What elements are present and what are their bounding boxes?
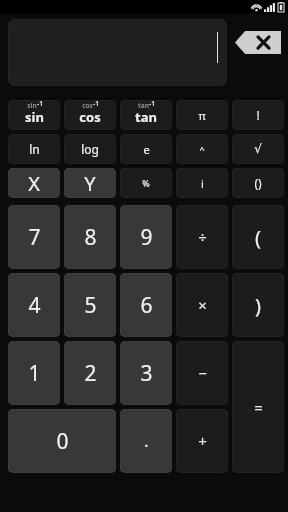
staticText: 7 xyxy=(28,223,41,252)
button[interactable]: . xyxy=(120,409,172,473)
staticText: ) xyxy=(255,292,261,319)
staticText: π xyxy=(198,108,206,123)
staticText: i xyxy=(201,176,204,191)
staticText: 4 xyxy=(28,291,41,320)
staticText: -1 xyxy=(93,100,99,108)
staticText: ÷ xyxy=(198,227,207,247)
staticText: 6 xyxy=(140,291,153,320)
button[interactable]: 4 xyxy=(8,273,60,337)
button[interactable]: X xyxy=(8,168,60,198)
staticText: cos xyxy=(79,108,101,126)
button[interactable]: Delete xyxy=(235,31,281,54)
staticText: + xyxy=(198,431,207,451)
button[interactable]: ) xyxy=(232,273,284,337)
button[interactable]: ! xyxy=(232,100,284,130)
button[interactable]: + xyxy=(176,409,228,473)
staticText: ( xyxy=(255,224,261,251)
staticText: log xyxy=(81,141,99,157)
button[interactable]: ^ xyxy=(176,134,228,164)
button[interactable] xyxy=(8,19,227,86)
button[interactable]: ÷ xyxy=(176,205,228,269)
staticText: cos xyxy=(82,101,93,110)
staticText: % xyxy=(142,177,150,189)
staticText: () xyxy=(254,175,262,191)
button[interactable]: ln xyxy=(8,134,60,164)
staticText: √ xyxy=(254,142,262,156)
staticText: 5 xyxy=(84,291,97,320)
button[interactable]: tan xyxy=(120,100,172,130)
button[interactable]: 7 xyxy=(8,205,60,269)
staticText: = xyxy=(254,397,263,417)
staticText: 3 xyxy=(140,359,153,388)
staticText: -1 xyxy=(149,100,155,108)
button[interactable]: 5 xyxy=(64,273,116,337)
staticText: 2 xyxy=(84,359,97,388)
button[interactable]: 6 xyxy=(120,273,172,337)
button[interactable]: 8 xyxy=(64,205,116,269)
button[interactable]: 0 xyxy=(8,409,116,473)
button[interactable]: π xyxy=(176,100,228,130)
staticText: sin xyxy=(25,108,44,126)
button[interactable]: Equals xyxy=(232,341,284,473)
button[interactable]: e xyxy=(120,134,172,164)
button[interactable]: () xyxy=(232,168,284,198)
staticText: . xyxy=(144,430,149,452)
staticText: Y xyxy=(84,170,96,197)
staticText: 0 xyxy=(56,427,69,456)
button[interactable]: − xyxy=(176,341,228,405)
button[interactable]: % xyxy=(120,168,172,198)
button[interactable]: 1 xyxy=(8,341,60,405)
button[interactable]: 3 xyxy=(120,341,172,405)
button[interactable]: cos xyxy=(64,100,116,130)
button[interactable]: i xyxy=(176,168,228,198)
staticText: 9 xyxy=(140,223,153,252)
staticText: ln xyxy=(29,141,40,157)
staticText: tan xyxy=(138,101,149,110)
staticText: ! xyxy=(256,107,260,123)
staticText: tan xyxy=(135,108,157,126)
button[interactable]: × xyxy=(176,273,228,337)
button[interactable]: ( xyxy=(232,205,284,269)
staticText: sin xyxy=(27,101,37,110)
button[interactable]: Y xyxy=(64,168,116,198)
staticText: e xyxy=(143,142,150,157)
button[interactable]: 2 xyxy=(64,341,116,405)
button[interactable]: log xyxy=(64,134,116,164)
staticText: -1 xyxy=(37,100,43,108)
button[interactable]: sin xyxy=(8,100,60,130)
staticText: − xyxy=(198,363,207,383)
staticText: X xyxy=(28,170,40,197)
button[interactable]: √ xyxy=(232,134,284,164)
staticText: 1 xyxy=(28,359,41,388)
staticText: × xyxy=(198,295,207,315)
staticText: 8 xyxy=(84,223,97,252)
staticText: ^ xyxy=(199,143,205,155)
button[interactable]: 9 xyxy=(120,205,172,269)
